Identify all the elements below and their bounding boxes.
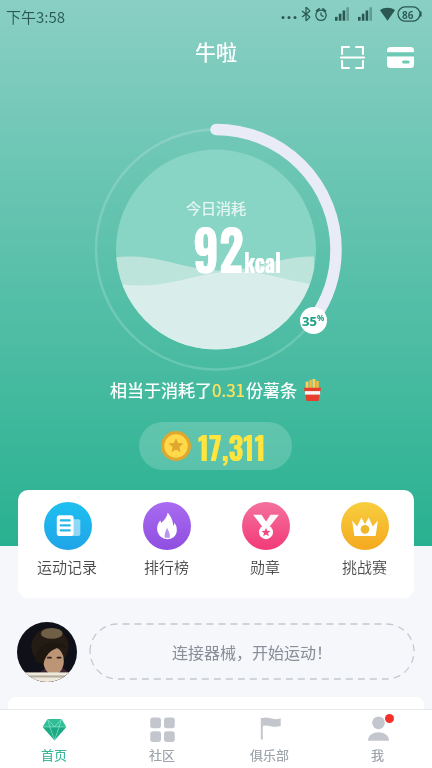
staticText: 勋章 [250,556,281,578]
button[interactable]: 勋章 [216,490,315,598]
staticText: 我 [371,745,385,764]
staticText: 0.31 [212,377,246,402]
button[interactable]: Profile [17,622,77,682]
staticText: 35 [302,312,317,330]
staticText: 挑战赛 [342,556,388,578]
button[interactable]: Scan code [330,35,374,79]
staticText: 份薯条 [246,377,297,402]
button[interactable]: 17,311 [139,422,292,470]
staticText: 17,311 [198,423,265,470]
staticText: 俱乐部 [250,745,290,764]
staticText: kcal [244,242,282,281]
staticText: 今日消耗 [186,197,247,219]
staticText: 首页 [41,745,68,764]
staticText: 86 [402,8,414,22]
staticText: 连接器械，开始运动！ [172,640,333,663]
button[interactable]: Membership card [378,35,422,79]
staticText: 相当于消耗了 [110,377,212,402]
staticText: 牛啦 [195,36,237,66]
button[interactable]: 排行榜 [117,490,216,598]
staticText: 运动记录 [37,556,98,578]
button[interactable]: 运动记录 [18,490,117,598]
button[interactable]: 首页 [0,710,108,768]
button[interactable]: 俱乐部 [216,710,324,768]
staticText: 92 [193,206,244,289]
button[interactable]: 挑战赛 [315,490,414,598]
staticText: 社区 [149,745,176,764]
button[interactable]: 社区 [108,710,216,768]
staticText: 排行榜 [144,556,190,578]
staticText: 下午3:58 [6,6,66,28]
button[interactable]: 连接器械，开始运动！ [90,624,414,679]
staticText: % [317,312,325,323]
button[interactable]: 我 [324,710,432,768]
